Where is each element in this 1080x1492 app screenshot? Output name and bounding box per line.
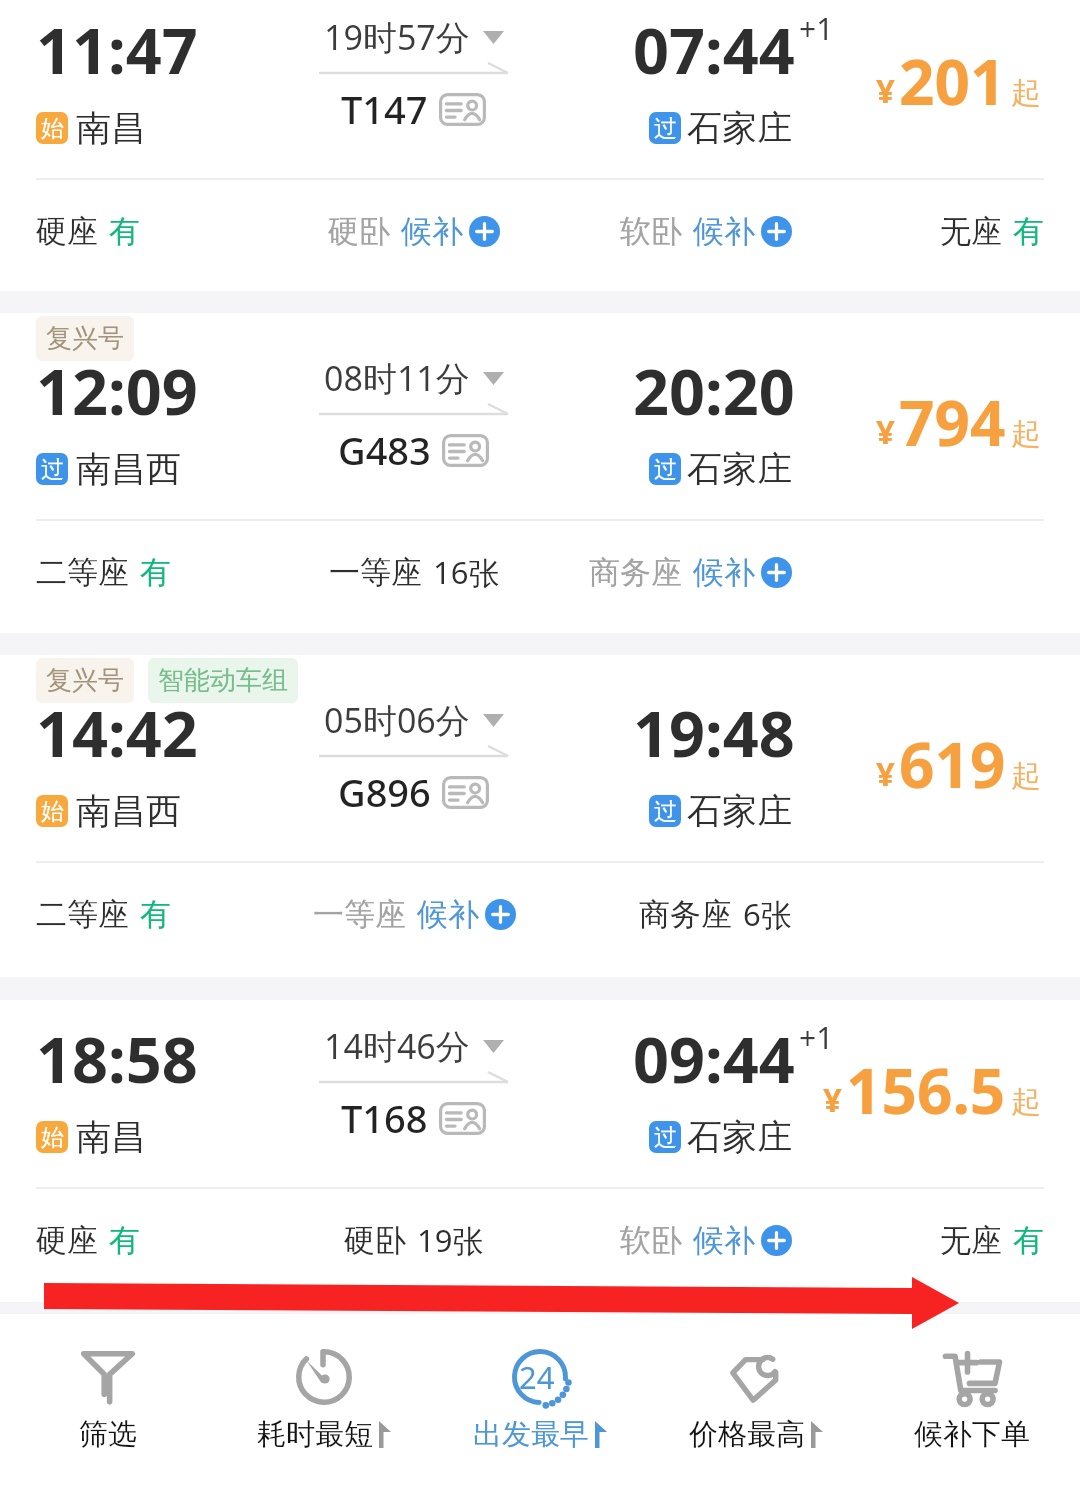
button[interactable]: 价格最高 [648, 1314, 864, 1492]
staticText: 起 [1011, 1083, 1041, 1121]
staticText: 二等座 [36, 553, 129, 592]
staticText: 08时11分 [324, 355, 470, 401]
staticText: ¥ [876, 751, 895, 796]
button[interactable]: 耗时最短 [216, 1314, 432, 1492]
staticText: 有 [140, 553, 171, 592]
staticText: 过 [654, 114, 677, 143]
staticText: 11:47 [36, 7, 198, 93]
staticText: 05时06分 [324, 697, 470, 743]
button[interactable]: 候补下单 [864, 1314, 1080, 1492]
staticText: 09:44 [633, 1016, 795, 1102]
button[interactable]: 筛选 [0, 1314, 216, 1492]
staticText: 石家庄 [687, 447, 792, 491]
staticText: 20:20 [633, 348, 795, 434]
staticText: 一等座 [329, 553, 422, 592]
staticText: 价格最高 [689, 1416, 805, 1453]
button[interactable]: 18:58 [0, 1000, 1080, 1302]
staticText: 有 [1013, 212, 1044, 251]
staticText: 候补 [693, 553, 755, 592]
staticText: ¥ [823, 1077, 842, 1122]
staticText: 南昌 [76, 1115, 146, 1159]
staticText: 过 [41, 455, 64, 484]
staticText: 起 [1011, 74, 1041, 112]
staticText: 南昌 [76, 106, 146, 150]
staticText: 无座 [940, 1221, 1002, 1260]
staticText: 石家庄 [687, 789, 792, 833]
other: 出发最早 [512, 1349, 568, 1405]
staticText: T147 [341, 83, 428, 135]
staticText: 硬座 [36, 1221, 98, 1260]
staticText: 794 [899, 380, 1006, 464]
other: 耗时最短 [296, 1349, 352, 1405]
staticText: 有 [140, 895, 171, 934]
staticText: 有 [109, 212, 140, 251]
staticText: 石家庄 [687, 106, 792, 150]
staticText: 过 [654, 455, 677, 484]
staticText: 软卧 [620, 1221, 682, 1260]
button[interactable]: 11:47 [0, 0, 1080, 282]
other: 筛选 [81, 1350, 135, 1404]
staticText: 始 [41, 1123, 64, 1152]
other: 价格最高 [727, 1348, 785, 1406]
staticText: 12:09 [36, 348, 198, 434]
staticText: 14:42 [36, 690, 198, 776]
staticText: 07:44 [633, 7, 795, 93]
staticText: 智能动车组 [158, 664, 288, 697]
staticText: 软卧 [620, 212, 682, 251]
staticText: 耗时最短 [257, 1416, 373, 1453]
staticText: 筛选 [79, 1416, 137, 1453]
staticText: 无座 [940, 212, 1002, 251]
staticText: 6张 [743, 893, 792, 935]
staticText: 有 [109, 1221, 140, 1260]
staticText: 商务座 [639, 895, 732, 934]
staticText: 南昌西 [76, 447, 181, 491]
staticText: 候补 [693, 1221, 755, 1260]
other: 候补下单 [940, 1345, 1004, 1409]
staticText: 商务座 [589, 553, 682, 592]
staticText: ¥ [876, 68, 895, 113]
staticText: 复兴号 [46, 664, 124, 697]
staticText: 16张 [433, 551, 500, 593]
staticText: 过 [654, 1123, 677, 1152]
staticText: G483 [338, 424, 431, 476]
staticText: T168 [341, 1092, 428, 1144]
staticText: 候补 [417, 895, 479, 934]
staticText: 始 [41, 797, 64, 826]
staticText: 出发最早 [473, 1416, 589, 1453]
staticText: 石家庄 [687, 1115, 792, 1159]
staticText: 19时57分 [324, 14, 470, 60]
staticText: +1 [799, 8, 834, 49]
staticText: +1 [799, 1017, 834, 1058]
staticText: 二等座 [36, 895, 129, 934]
staticText: 起 [1011, 757, 1041, 795]
staticText: 始 [41, 114, 64, 143]
staticText: 24 [519, 1356, 555, 1398]
staticText: 619 [899, 722, 1006, 806]
staticText: 一等座 [313, 895, 406, 934]
staticText: 有 [1013, 1221, 1044, 1260]
staticText: 起 [1011, 415, 1041, 453]
staticText: 硬卧 [328, 212, 390, 251]
button[interactable]: 出发最早 [432, 1314, 648, 1492]
staticText: 156.5 [846, 1048, 1006, 1132]
staticText: 201 [899, 39, 1006, 123]
button[interactable]: 复兴号 [0, 313, 1080, 633]
staticText: 候补 [401, 212, 463, 251]
staticText: 硬座 [36, 212, 98, 251]
staticText: 14时46分 [324, 1023, 470, 1069]
staticText: 19张 [417, 1219, 484, 1261]
staticText: 候补下单 [914, 1416, 1030, 1453]
staticText: 南昌西 [76, 789, 181, 833]
staticText: ¥ [876, 409, 895, 454]
button[interactable]: 复兴号 [0, 655, 1080, 977]
staticText: 复兴号 [46, 322, 124, 355]
staticText: 过 [654, 797, 677, 826]
staticText: G896 [338, 766, 431, 818]
staticText: 19:48 [633, 690, 795, 776]
staticText: 18:58 [36, 1016, 198, 1102]
staticText: 硬卧 [344, 1221, 406, 1260]
staticText: 候补 [693, 212, 755, 251]
